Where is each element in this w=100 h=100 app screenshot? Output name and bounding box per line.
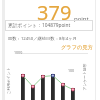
staticText: 1000 [14, 50, 23, 55]
staticText: 379 [37, 0, 72, 26]
staticText: グラフの見方 [61, 44, 93, 51]
staticText: point [74, 15, 89, 23]
staticText: 累計ポイント：104879point [8, 22, 71, 29]
staticText: 100 [68, 68, 75, 73]
staticText: アンケート回答 [81, 50, 86, 90]
button[interactable]: グラフの見方 [61, 44, 93, 51]
staticText: 回数：12450／継続日数：8年4ヶ月 [8, 35, 77, 41]
staticText: ご利用ポイント [5, 54, 10, 94]
